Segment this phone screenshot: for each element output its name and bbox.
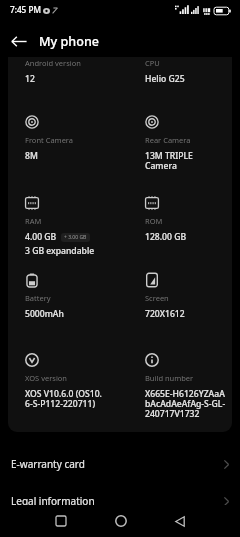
- staticText: 4.00 GB: [25, 231, 57, 243]
- button[interactable]: E-warranty card: [0, 446, 240, 482]
- staticText: Screen: [145, 293, 169, 303]
- button[interactable]: Recent apps: [44, 505, 77, 537]
- staticText: My phone: [39, 33, 100, 50]
- staticText: 720X1612: [145, 308, 185, 320]
- button[interactable]: Home: [104, 505, 137, 537]
- staticText: 5000mAh: [25, 308, 64, 320]
- staticText: XOS V10.6.0 (OS10. 6-S-P112-220711): [25, 388, 102, 409]
- staticText: 8M: [25, 150, 38, 162]
- staticText: Helio G25: [145, 73, 185, 85]
- staticText: 7:45 PM: [10, 4, 41, 15]
- staticText: XOS version: [25, 373, 68, 383]
- staticText: 12: [25, 73, 35, 85]
- staticText: 3 GB expandable: [25, 245, 95, 257]
- staticText: RAM: [25, 216, 42, 226]
- button[interactable]: Legal information: [0, 483, 240, 519]
- staticText: X665E-H6126YZAaA bAcAdAeAfAg-S-GL- 24071…: [145, 388, 226, 419]
- button[interactable]: Back: [163, 505, 196, 537]
- staticText: CPU: [145, 58, 160, 68]
- staticText: E-warranty card: [11, 457, 85, 471]
- staticText: ROM: [145, 216, 163, 226]
- staticText: Front Camera: [25, 135, 74, 145]
- staticText: 128.00 GB: [145, 231, 187, 243]
- staticText: 13M TRIPLE Camera: [145, 150, 193, 171]
- staticText: + 3.00 GB: [64, 234, 87, 241]
- button[interactable]: Back: [7, 29, 31, 53]
- staticText: Battery: [25, 293, 51, 303]
- staticText: Android version: [25, 58, 81, 68]
- staticText: Legal information: [11, 494, 95, 508]
- staticText: Rear Camera: [145, 135, 191, 145]
- staticText: Build number: [145, 373, 194, 383]
